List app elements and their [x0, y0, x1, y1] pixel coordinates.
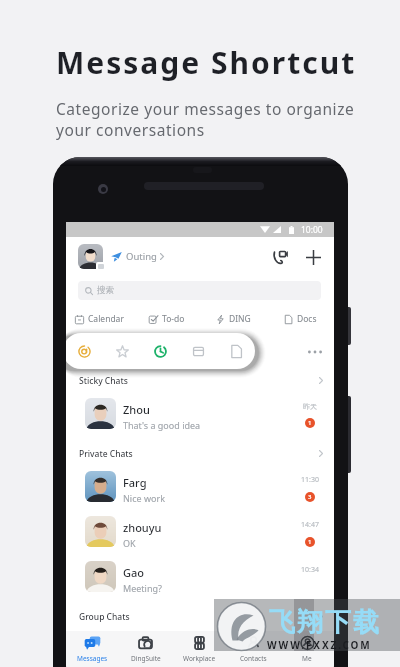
button[interactable]: Me — [280, 631, 334, 667]
staticText: OK — [123, 537, 136, 549]
staticText: Private Chats — [79, 448, 133, 460]
staticText: Meeting? — [123, 582, 162, 594]
staticText: Group Chats — [79, 611, 130, 623]
button[interactable]: Messages — [66, 631, 119, 667]
button[interactable]: Docs — [267, 305, 334, 333]
button[interactable]: zhouyu — [66, 509, 334, 554]
button[interactable]: DingSuite — [119, 631, 172, 667]
button[interactable]: Archive — [179, 333, 217, 369]
staticText: Nice work — [123, 492, 165, 504]
staticText: 3 — [308, 493, 312, 501]
button[interactable]: Starred — [103, 333, 141, 369]
staticText: Zhou — [123, 402, 150, 417]
staticText: 14:47 — [301, 520, 319, 530]
staticText: 1 — [308, 538, 312, 546]
button[interactable]: Workplace — [172, 631, 226, 667]
button[interactable]: More — [304, 341, 326, 363]
staticText: 10:00 — [301, 224, 323, 236]
button[interactable]: Contacts — [226, 631, 280, 667]
staticText: Docs — [297, 313, 317, 325]
staticText: 搜索 — [97, 285, 114, 296]
button[interactable]: Calendar — [66, 305, 133, 333]
staticText: zhouyu — [123, 520, 162, 535]
button[interactable]: Files — [217, 333, 255, 369]
button[interactable]: To-do — [133, 305, 200, 333]
button[interactable]: Call — [269, 246, 291, 268]
staticText: 昨天 — [303, 402, 317, 411]
staticText: Sticky Chats — [79, 375, 128, 387]
button[interactable]: Profile — [78, 244, 103, 269]
button[interactable]: Zhou — [66, 391, 334, 436]
button[interactable]: Add — [302, 246, 324, 268]
staticText: Messages — [77, 654, 108, 663]
staticText: Calendar — [88, 313, 124, 325]
button[interactable]: Mentions — [66, 333, 103, 369]
staticText: 1 — [308, 419, 312, 427]
button[interactable]: Farg — [66, 464, 334, 509]
staticText: Message Shortcut — [56, 42, 357, 83]
staticText: Gao — [123, 565, 145, 580]
button[interactable]: Sticky Chats — [66, 363, 334, 391]
staticText: That's a good idea — [123, 419, 201, 431]
button[interactable]: 搜索 — [78, 281, 321, 300]
staticText: Workplace — [183, 654, 216, 663]
staticText: 10:34 — [301, 565, 319, 575]
button[interactable]: Unread — [141, 333, 179, 369]
button[interactable]: Group Chats — [66, 599, 334, 627]
staticText: 飞翔下载 — [268, 606, 380, 639]
button[interactable]: Gao — [66, 554, 334, 599]
button[interactable]: Outing — [111, 250, 164, 263]
button[interactable]: DING — [200, 305, 267, 333]
staticText: Contacts — [240, 654, 267, 663]
staticText: DING — [229, 313, 251, 325]
staticText: Categorize your messages to organize you… — [56, 98, 355, 141]
staticText: 11:30 — [301, 475, 319, 485]
staticText: To-do — [162, 313, 185, 325]
staticText: DingSuite — [131, 654, 161, 663]
staticText: WWW.FXXZ.COM — [267, 638, 372, 652]
staticText: Me — [302, 654, 312, 663]
staticText: Outing — [126, 250, 157, 263]
button[interactable]: Private Chats — [66, 436, 334, 464]
staticText: Farg — [123, 475, 147, 490]
